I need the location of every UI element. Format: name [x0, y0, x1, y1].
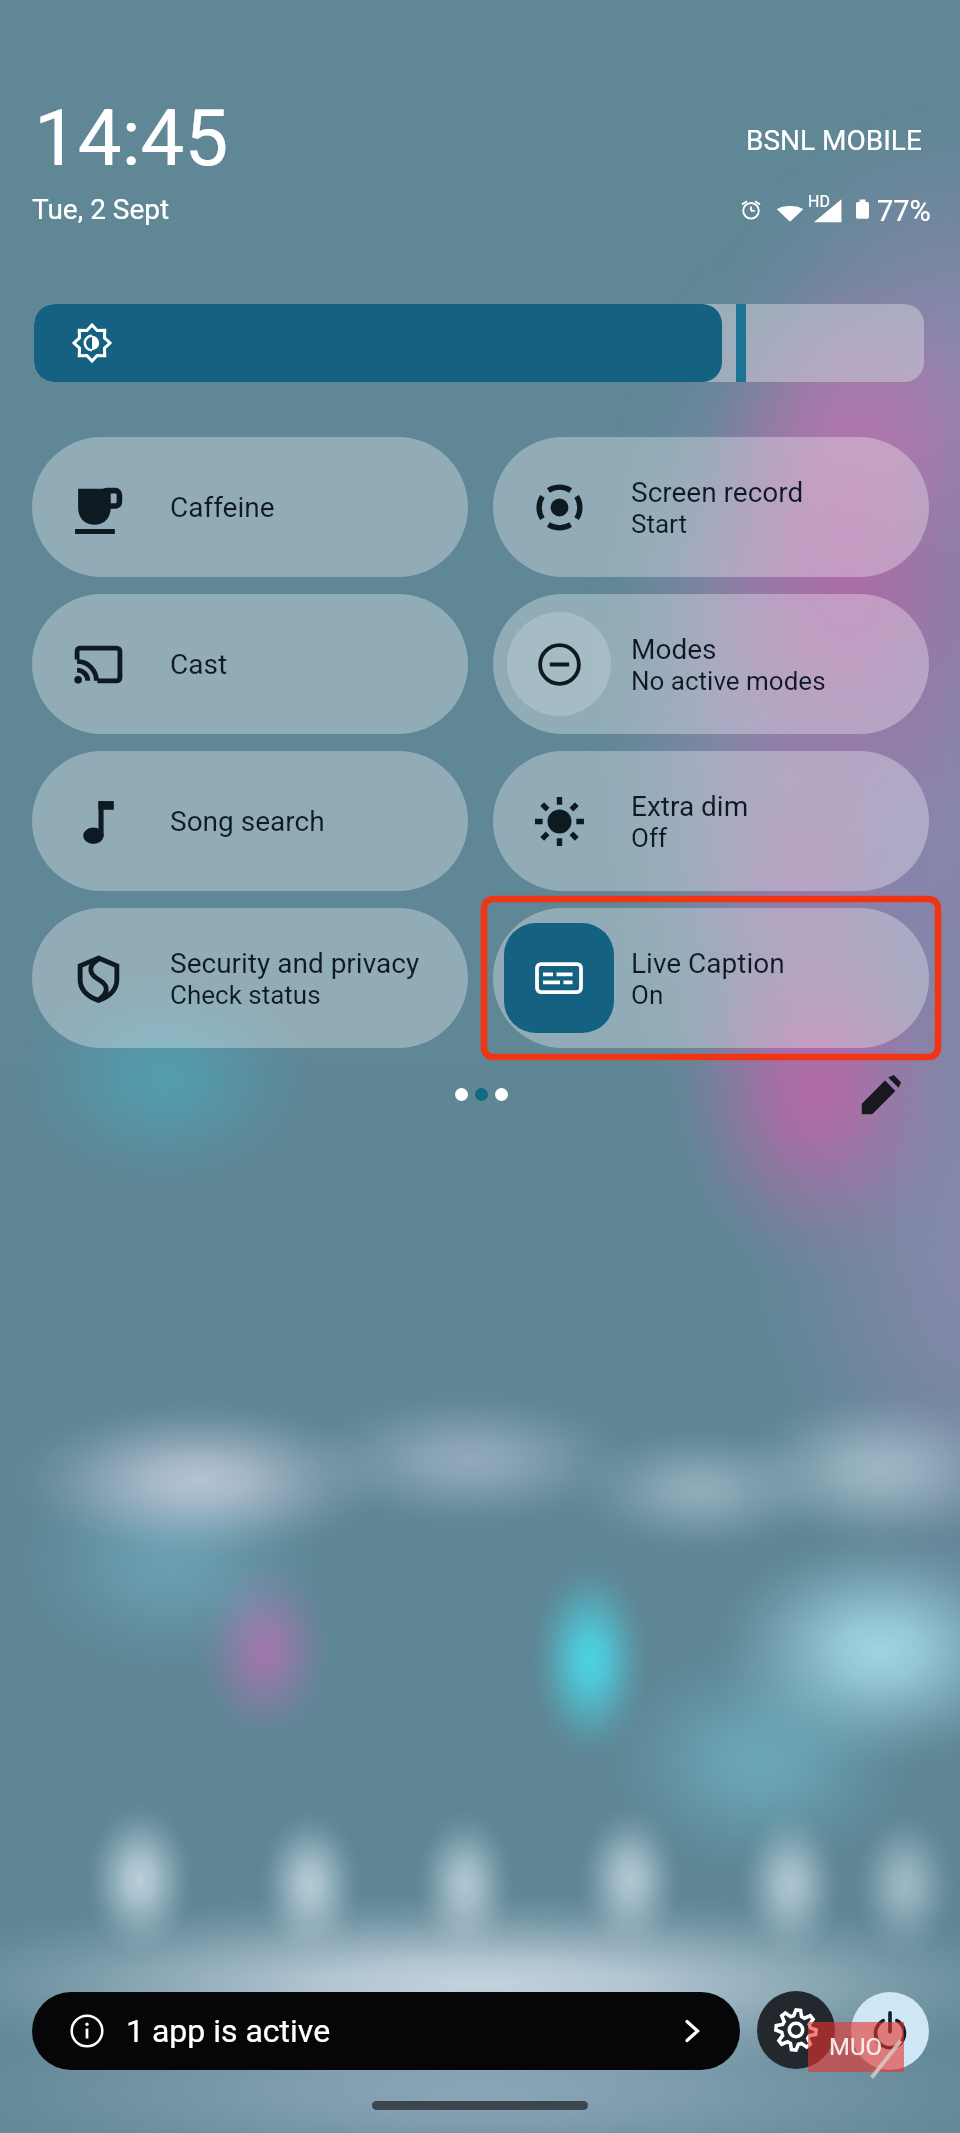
staticText: Security and privacy [170, 947, 420, 980]
button[interactable]: Screen record [493, 437, 929, 577]
staticText: Screen record [631, 476, 804, 509]
staticText: No active modes [631, 666, 826, 696]
staticText: MUO [829, 2033, 883, 2061]
staticText: On [631, 980, 664, 1010]
staticText: Cast [170, 648, 228, 681]
button[interactable]: Edit tiles [860, 1074, 902, 1116]
staticText: 1 app is active [126, 2012, 331, 2050]
staticText: BSNL MOBILE [746, 124, 922, 157]
staticText: Live Caption [631, 947, 785, 980]
staticText: Tue, 2 Sept [32, 193, 170, 226]
button[interactable]: Modes [493, 594, 929, 734]
staticText: Caffeine [170, 491, 275, 524]
button[interactable]: Live Caption [493, 908, 929, 1048]
staticText: Check status [170, 980, 321, 1010]
button[interactable]: Caffeine [32, 437, 468, 577]
button[interactable]: Security and privacy [32, 908, 468, 1048]
button[interactable]: Cast [32, 594, 468, 734]
button[interactable]: Extra dim [493, 751, 929, 891]
button[interactable]: 1 app is active [32, 1992, 740, 2070]
button[interactable]: Power [851, 1992, 929, 2070]
button[interactable]: Settings [757, 1991, 835, 2069]
staticText: Modes [631, 633, 717, 666]
staticText: Off [631, 823, 667, 853]
staticText: Start [631, 509, 688, 539]
button[interactable]: Brightness [34, 304, 924, 382]
staticText: Extra dim [631, 790, 749, 823]
staticText: Song search [170, 805, 325, 838]
staticText: 77% [877, 194, 931, 228]
button[interactable]: Song search [32, 751, 468, 891]
staticText: HD [808, 192, 830, 211]
staticText: 14:45 [34, 93, 229, 184]
